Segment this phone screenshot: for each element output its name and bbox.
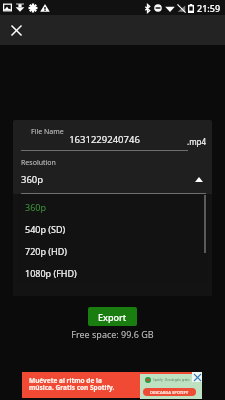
staticText: DESCARGA SPOTIFY xyxy=(150,390,189,395)
button[interactable]: 540p (SD) xyxy=(18,218,208,240)
staticText: File Name xyxy=(31,127,64,137)
staticText: Export xyxy=(98,311,127,323)
staticText: 21:59 xyxy=(197,2,221,14)
staticText: 540p (SD) xyxy=(25,223,66,235)
button[interactable]: 360p xyxy=(18,196,208,218)
staticText: Spotify · Descárgalo gratis xyxy=(153,378,190,382)
button[interactable]: 720p (HD) xyxy=(18,240,208,262)
button[interactable]: Close ad xyxy=(192,372,202,382)
staticText: música. Gratis con Spotify. xyxy=(29,383,115,392)
staticText: 1631229240746 xyxy=(21,133,188,146)
staticText: Free space: 99.6 GB xyxy=(0,328,225,340)
button[interactable]: Muévete al ritmo de la xyxy=(22,372,202,398)
staticText: Resolution xyxy=(21,158,56,168)
staticText: Muévete al ritmo de la xyxy=(29,376,102,385)
button[interactable]: 1080p (FHD) xyxy=(18,262,208,284)
staticText: 360p xyxy=(21,173,44,186)
button[interactable]: 360p xyxy=(21,169,206,193)
staticText: .mp4 xyxy=(187,136,207,147)
button[interactable]: Close xyxy=(6,20,26,40)
staticText: 360p xyxy=(25,201,46,213)
button[interactable]: DESCARGA SPOTIFY xyxy=(143,388,196,396)
staticText: 1080p (FHD) xyxy=(25,267,77,279)
staticText: 720p (HD) xyxy=(25,245,67,257)
button[interactable]: Export xyxy=(88,307,137,326)
